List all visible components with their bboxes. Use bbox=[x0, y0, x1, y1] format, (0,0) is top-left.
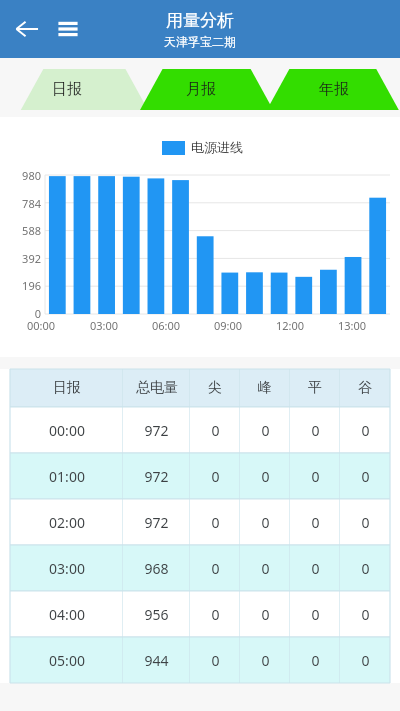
staticText: 0 bbox=[261, 605, 270, 624]
staticText: 日报 bbox=[53, 379, 81, 397]
staticText: 01:00 bbox=[49, 467, 85, 486]
button[interactable]: 04:00 bbox=[10, 591, 390, 637]
button[interactable]: 月报 bbox=[134, 69, 267, 110]
staticText: 天津孚宝二期 bbox=[164, 34, 236, 49]
staticText: 588 bbox=[22, 223, 41, 238]
staticText: 196 bbox=[22, 278, 41, 293]
staticText: 0 bbox=[311, 467, 320, 486]
staticText: 0 bbox=[211, 651, 220, 670]
button[interactable]: 日报 bbox=[10, 369, 390, 407]
staticText: 电源进线 bbox=[191, 139, 243, 155]
staticText: 总电量 bbox=[136, 379, 178, 397]
button[interactable]: 01:00 bbox=[10, 453, 390, 499]
button[interactable]: 00:00 bbox=[10, 407, 390, 453]
staticText: 972 bbox=[144, 467, 169, 486]
staticText: 02:00 bbox=[49, 513, 85, 532]
staticText: 0 bbox=[211, 467, 220, 486]
staticText: 峰 bbox=[258, 379, 272, 397]
staticText: 月报 bbox=[186, 80, 216, 99]
staticText: 0 bbox=[311, 421, 320, 440]
staticText: 968 bbox=[144, 559, 169, 578]
staticText: 12:00 bbox=[276, 318, 305, 333]
staticText: 956 bbox=[144, 605, 169, 624]
staticText: 年报 bbox=[319, 80, 349, 99]
staticText: 00:00 bbox=[27, 318, 56, 333]
staticText: 0 bbox=[261, 467, 270, 486]
button[interactable]: 03:00 bbox=[10, 545, 390, 591]
staticText: 09:00 bbox=[214, 318, 243, 333]
staticText: 972 bbox=[144, 513, 169, 532]
staticText: 03:00 bbox=[90, 318, 119, 333]
staticText: 0 bbox=[311, 513, 320, 532]
staticText: 平 bbox=[308, 379, 322, 397]
staticText: 0 bbox=[361, 467, 370, 486]
staticText: 用量分析 bbox=[166, 10, 234, 31]
staticText: 0 bbox=[211, 559, 220, 578]
staticText: 0 bbox=[261, 421, 270, 440]
staticText: 0 bbox=[261, 513, 270, 532]
staticText: 日报 bbox=[52, 80, 82, 99]
staticText: 00:00 bbox=[49, 421, 85, 440]
staticText: 0 bbox=[211, 421, 220, 440]
staticText: 0 bbox=[361, 651, 370, 670]
staticText: 392 bbox=[22, 251, 41, 266]
staticText: 05:00 bbox=[49, 651, 85, 670]
staticText: 0 bbox=[361, 421, 370, 440]
staticText: 0 bbox=[211, 605, 220, 624]
staticText: 尖 bbox=[208, 379, 222, 397]
staticText: 0 bbox=[361, 605, 370, 624]
staticText: 0 bbox=[311, 651, 320, 670]
staticText: 04:00 bbox=[49, 605, 85, 624]
staticText: 0 bbox=[361, 559, 370, 578]
button[interactable]: 年报 bbox=[267, 69, 400, 110]
staticText: 0 bbox=[261, 651, 270, 670]
staticText: 0 bbox=[311, 605, 320, 624]
button[interactable]: Menu bbox=[48, 9, 88, 49]
staticText: 972 bbox=[144, 421, 169, 440]
staticText: 0 bbox=[34, 306, 41, 321]
button[interactable]: 日报 bbox=[0, 69, 134, 110]
staticText: 13:00 bbox=[338, 318, 367, 333]
staticText: 944 bbox=[144, 651, 169, 670]
staticText: 784 bbox=[22, 196, 41, 211]
staticText: 980 bbox=[22, 168, 41, 183]
staticText: 06:00 bbox=[152, 318, 181, 333]
staticText: 0 bbox=[211, 513, 220, 532]
staticText: 0 bbox=[261, 559, 270, 578]
staticText: 0 bbox=[361, 513, 370, 532]
button[interactable]: 02:00 bbox=[10, 499, 390, 545]
staticText: 03:00 bbox=[49, 559, 85, 578]
button[interactable]: 05:00 bbox=[10, 637, 390, 683]
staticText: 0 bbox=[311, 559, 320, 578]
staticText: 谷 bbox=[358, 379, 372, 397]
button[interactable]: Back bbox=[6, 8, 48, 50]
